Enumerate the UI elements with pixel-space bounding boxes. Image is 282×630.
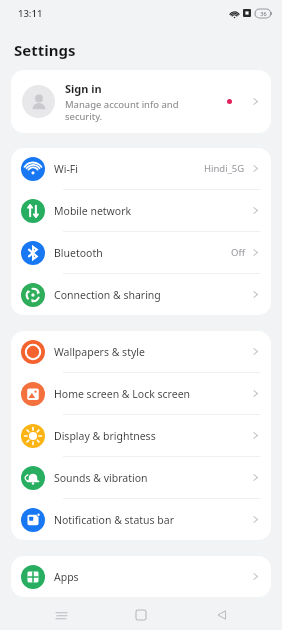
staticText: Wi-Fi [54, 162, 79, 176]
button[interactable]: Wallpapers & style [11, 331, 271, 372]
staticText: Settings [14, 40, 76, 60]
staticText: Sounds & vibration [54, 471, 148, 485]
staticText: Connection & sharing [54, 288, 161, 302]
staticText: Home screen & Lock screen [54, 387, 191, 401]
staticText: Mobile network [54, 204, 132, 218]
button[interactable]: Recent apps [41, 600, 81, 630]
button[interactable]: Apps [11, 556, 271, 597]
staticText: Off [231, 246, 245, 259]
staticText: Notification & status bar [54, 513, 175, 527]
button[interactable]: Connection & sharing [11, 274, 271, 315]
staticText: Bluetooth [54, 246, 103, 260]
staticText: Sign in [65, 81, 102, 96]
button[interactable]: Sign in [11, 70, 271, 133]
button[interactable]: Notification & status bar [11, 499, 271, 540]
button[interactable]: Back [202, 600, 242, 630]
button[interactable]: Bluetooth [11, 232, 271, 273]
button[interactable]: Sounds & vibration [11, 457, 271, 498]
staticText: Apps [54, 570, 79, 584]
staticText: Display & brightness [54, 429, 156, 443]
button[interactable]: Mobile network [11, 190, 271, 231]
staticText: 36 [260, 10, 267, 17]
staticText: Manage account info and security. [65, 98, 179, 123]
button[interactable]: Home screen & Lock screen [11, 373, 271, 414]
staticText: Hindi_5G [204, 162, 245, 175]
button[interactable]: Home [121, 600, 161, 630]
button[interactable]: Display & brightness [11, 415, 271, 456]
staticText: 13:11 [18, 7, 43, 20]
staticText: Wallpapers & style [54, 345, 145, 359]
button[interactable]: Wi-Fi [11, 148, 271, 189]
